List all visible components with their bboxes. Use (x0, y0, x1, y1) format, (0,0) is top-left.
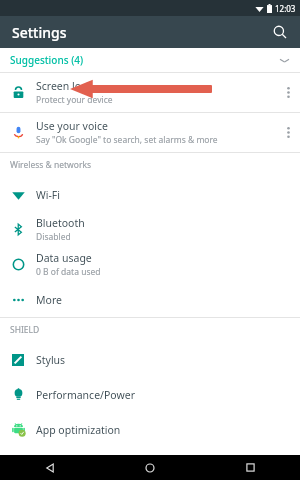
staticText: Wireless & networks (10, 159, 92, 171)
button[interactable]: Stylus (0, 342, 300, 377)
button[interactable]: Search (266, 18, 294, 46)
button[interactable]: Home (100, 455, 200, 480)
button[interactable]: Bluetooth (0, 212, 300, 247)
staticText: Bluetooth (36, 216, 85, 230)
button[interactable]: More (0, 282, 300, 317)
button[interactable]: Back (0, 455, 100, 480)
button[interactable]: Suggestions (4) (0, 48, 300, 72)
staticText: Screen lock (36, 79, 92, 93)
staticText: App optimization (36, 423, 121, 437)
staticText: Protect your device (36, 94, 113, 106)
staticText: 0 B of data used (36, 266, 101, 278)
button[interactable]: More options (276, 73, 300, 112)
button[interactable]: App optimization (0, 412, 300, 447)
button[interactable]: Performance/Power (0, 377, 300, 412)
staticText: 12:03 (275, 3, 296, 14)
button[interactable]: Use your voice (0, 113, 300, 152)
button[interactable]: Screen lock (0, 73, 300, 112)
staticText: Wi-Fi (36, 188, 61, 202)
staticText: Performance/Power (36, 388, 135, 402)
button[interactable]: More options (276, 113, 300, 152)
staticText: Stylus (36, 353, 66, 367)
staticText: SHIELD (10, 324, 40, 336)
staticText: Data usage (36, 251, 92, 265)
button[interactable]: Recent apps (200, 455, 300, 480)
button[interactable]: Data usage (0, 247, 300, 282)
button[interactable]: Wi-Fi (0, 177, 300, 212)
staticText: Suggestions (4) (10, 53, 84, 67)
staticText: Disabled (36, 231, 71, 243)
staticText: Settings (12, 23, 67, 42)
staticText: Say "Ok Google" to search, set alarms & … (36, 134, 218, 146)
staticText: Use your voice (36, 119, 108, 133)
staticText: More (36, 293, 62, 307)
